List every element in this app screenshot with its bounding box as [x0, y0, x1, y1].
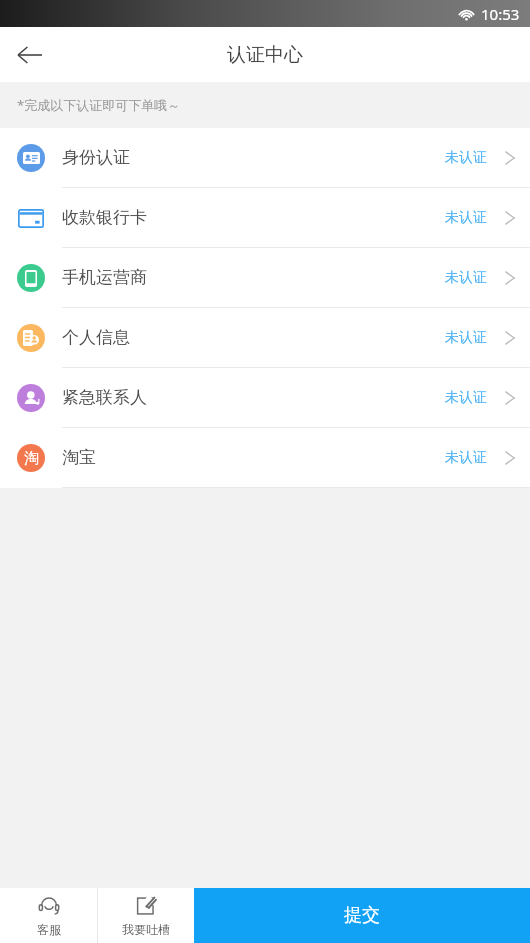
button[interactable]: 紧急联系人 — [0, 368, 530, 427]
staticText: 淘 — [24, 449, 39, 468]
staticText: 未认证 — [445, 209, 487, 227]
button[interactable]: 手机运营商 — [0, 248, 530, 307]
button[interactable]: 身份认证 — [0, 128, 530, 187]
staticText: 个人信息 — [62, 327, 130, 348]
button[interactable]: 淘 — [0, 428, 530, 487]
button[interactable]: 提交 — [194, 888, 530, 943]
staticText: 紧急联系人 — [62, 387, 147, 408]
staticText: 10:53 — [481, 4, 520, 24]
button[interactable]: Back — [8, 33, 52, 77]
button[interactable]: 我要吐槽 — [98, 888, 194, 943]
staticText: 我要吐槽 — [122, 922, 170, 937]
staticText: 未认证 — [445, 269, 487, 287]
button[interactable]: 个人信息 — [0, 308, 530, 367]
staticText: 客服 — [37, 922, 61, 937]
staticText: 未认证 — [445, 449, 487, 467]
staticText: 淘宝 — [62, 447, 96, 468]
staticText: 未认证 — [445, 329, 487, 347]
staticText: 未认证 — [445, 149, 487, 167]
staticText: *完成以下认证即可下单哦～ — [17, 96, 181, 114]
button[interactable]: 客服 — [0, 888, 97, 943]
staticText: 收款银行卡 — [62, 207, 147, 228]
staticText: 未认证 — [445, 389, 487, 407]
staticText: 身份认证 — [62, 147, 130, 168]
button[interactable]: 收款银行卡 — [0, 188, 530, 247]
staticText: 手机运营商 — [62, 267, 147, 288]
staticText: 提交 — [344, 904, 380, 927]
staticText: 认证中心 — [227, 43, 303, 67]
